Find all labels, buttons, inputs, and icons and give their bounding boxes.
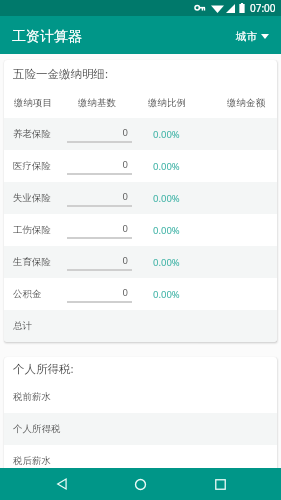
staticText: 养老保险 (13, 128, 51, 140)
staticText: 失业保险 (13, 192, 51, 204)
staticText: 个人所得税: (13, 361, 74, 377)
staticText: 07:00 (250, 1, 276, 15)
staticText: 生育保险 (13, 256, 51, 268)
staticText: 0.00% (153, 288, 180, 301)
button[interactable]: 公积金 (4, 278, 277, 310)
staticText: 0.00% (153, 192, 180, 205)
staticText: 城市 (236, 30, 257, 43)
staticText: 0 (67, 158, 128, 171)
button[interactable]: 税后薪水 (4, 445, 277, 468)
staticText: 医疗保险 (13, 160, 51, 172)
staticText: 五险一金缴纳明细: (13, 66, 109, 82)
staticText: 0.00% (153, 160, 180, 173)
staticText: 缴纳金额 (227, 97, 265, 109)
staticText: 0.00% (153, 224, 180, 237)
staticText: 税前薪水 (13, 391, 51, 403)
staticText: 缴纳项目 (14, 97, 52, 109)
button[interactable]: 医疗保险 (4, 150, 277, 182)
staticText: 0 (67, 254, 128, 267)
staticText: 公积金 (13, 288, 42, 300)
staticText: 缴纳比例 (148, 97, 186, 109)
staticText: 0.00% (153, 128, 180, 141)
staticText: 个人所得税 (13, 423, 61, 435)
button[interactable]: 个人所得税 (4, 413, 277, 445)
button[interactable]: 养老保险 (4, 118, 277, 150)
staticText: 工伤保险 (13, 224, 51, 236)
staticText: 0 (67, 222, 128, 235)
button[interactable]: Recents (204, 468, 236, 500)
staticText: 0 (67, 190, 128, 203)
staticText: 0 (67, 286, 128, 299)
staticText: 0 (67, 126, 128, 139)
button[interactable]: 总计 (4, 310, 277, 342)
button[interactable]: Back (46, 468, 78, 500)
button[interactable]: 工伤保险 (4, 214, 277, 246)
button[interactable]: Home (124, 468, 156, 500)
staticText: 总计 (13, 320, 32, 332)
staticText: 0.00% (153, 256, 180, 269)
button[interactable]: 生育保险 (4, 246, 277, 278)
staticText: 工资计算器 (12, 28, 82, 46)
button[interactable]: 城市 (224, 21, 281, 50)
staticText: 缴纳基数 (78, 97, 116, 109)
staticText: 税后薪水 (13, 455, 51, 467)
button[interactable]: 失业保险 (4, 182, 277, 214)
button[interactable]: 税前薪水 (4, 381, 277, 413)
